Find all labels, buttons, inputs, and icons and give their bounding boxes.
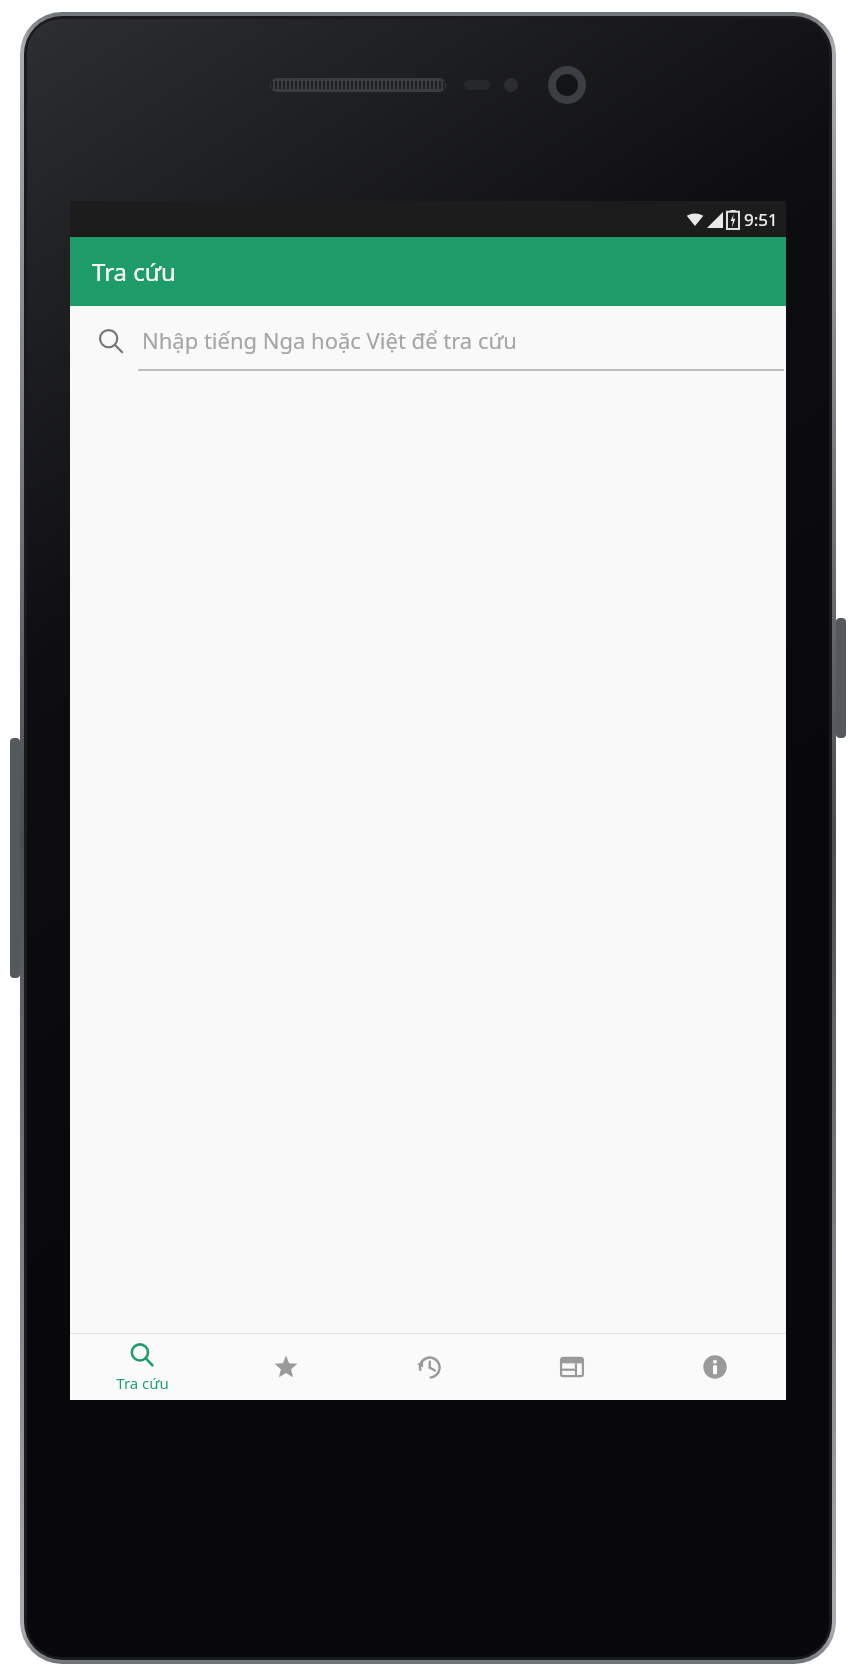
button[interactable]: Layout (500, 1334, 643, 1400)
button[interactable]: History (357, 1334, 500, 1400)
staticText: Nhập tiếng Nga hoặc Việt để tra cứu (142, 325, 517, 355)
staticText: Tra cứu (92, 255, 176, 288)
button[interactable]: Favorites (214, 1334, 357, 1400)
other: Search (98, 328, 124, 354)
staticText: 9:51 (744, 208, 778, 231)
button[interactable]: Tra cứu (70, 1334, 214, 1400)
staticText: Tra cứu (116, 1373, 169, 1393)
button[interactable]: Search (70, 306, 786, 381)
button[interactable]: Info (643, 1334, 786, 1400)
